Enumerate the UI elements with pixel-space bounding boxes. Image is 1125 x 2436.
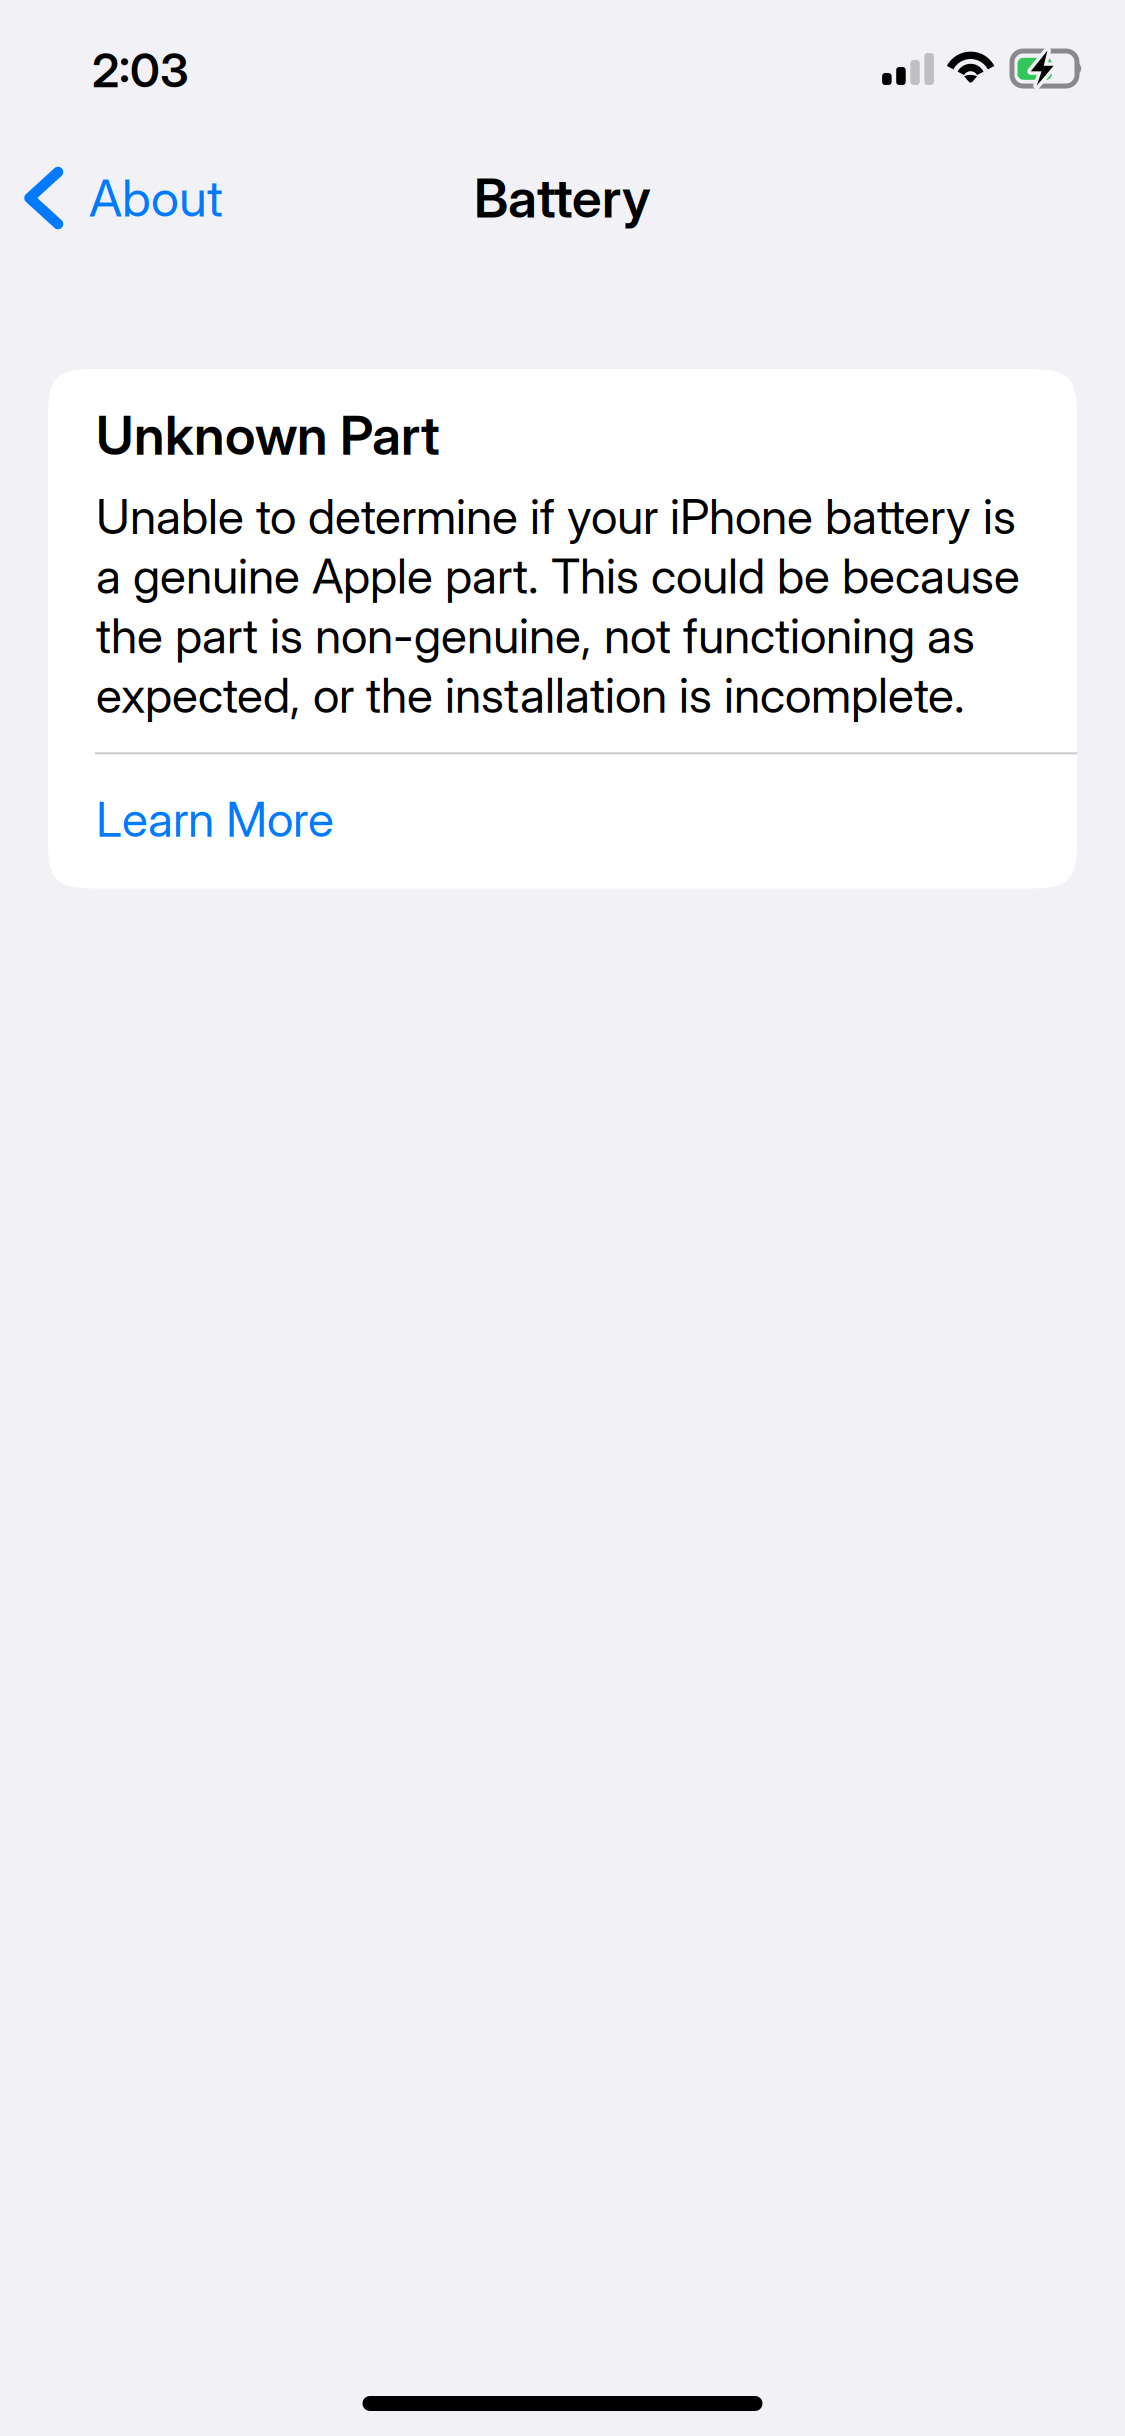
button[interactable]: Learn More [48, 754, 1077, 888]
staticText: Battery [474, 166, 651, 230]
staticText: Learn More [96, 790, 334, 848]
staticText: expected, or the installation is incompl… [96, 666, 965, 724]
button[interactable]: Back to About [0, 152, 243, 244]
staticText: About [89, 167, 223, 229]
staticText: 2:03 [92, 42, 189, 98]
staticText: a genuine Apple part. This could be beca… [96, 547, 1020, 605]
staticText: Unable to determine if your iPhone batte… [96, 487, 1016, 546]
staticText: the part is non-genuine, not functioning… [96, 607, 975, 665]
staticText: Unknown Part [96, 403, 440, 467]
